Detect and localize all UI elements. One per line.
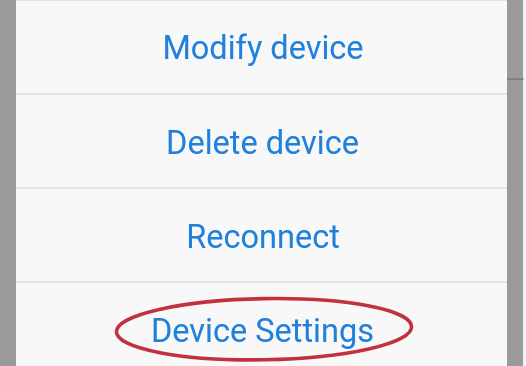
button[interactable]: Reconnect <box>16 189 507 281</box>
staticText: Device Settings <box>151 312 374 350</box>
button[interactable]: Modify device <box>16 1 507 93</box>
button[interactable]: Delete device <box>16 95 507 187</box>
staticText: Delete device <box>166 124 359 162</box>
button[interactable]: Device Settings <box>16 283 507 366</box>
staticText: Reconnect <box>186 218 340 256</box>
staticText: Modify device <box>162 29 364 67</box>
